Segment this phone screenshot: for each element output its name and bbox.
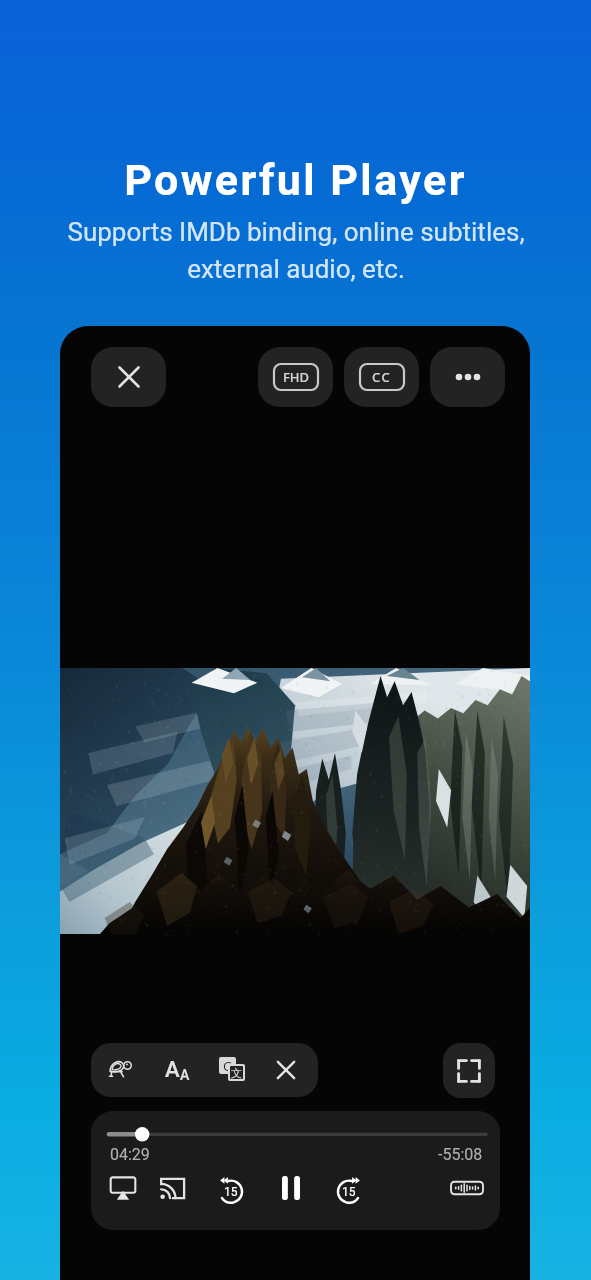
staticText: 文 [231, 1066, 242, 1079]
staticText: 15 [342, 1185, 356, 1199]
button[interactable]: Text size [155, 1048, 199, 1092]
staticText: CC [372, 368, 392, 386]
staticText: -55:08 [438, 1145, 483, 1164]
staticText: A [165, 1057, 180, 1083]
staticText: G [223, 1057, 233, 1074]
staticText: A [180, 1067, 190, 1083]
staticText: Powerful Player [124, 155, 467, 205]
button[interactable]: AirPlay [102, 1167, 144, 1209]
button[interactable]: Fullscreen [443, 1043, 495, 1098]
staticText: FHD [283, 368, 310, 386]
button[interactable]: Close tools [264, 1048, 308, 1092]
staticText: 04:29 [110, 1145, 150, 1164]
button[interactable]: Subtitles [344, 347, 419, 407]
button[interactable]: Playback speed [101, 1048, 145, 1092]
button[interactable]: Cast [151, 1167, 193, 1209]
button[interactable]: More options [430, 347, 505, 407]
button[interactable]: Quality FHD [258, 347, 333, 407]
staticText: Supports IMDb binding, online subtitles,… [67, 217, 525, 284]
staticText: 15 [224, 1185, 238, 1199]
button[interactable]: Pause [270, 1167, 312, 1209]
button[interactable]: Forward 15 seconds [328, 1167, 370, 1209]
button[interactable]: Translate [210, 1048, 254, 1092]
button[interactable]: Rewind 15 seconds [210, 1167, 252, 1209]
button[interactable]: Close [91, 347, 166, 407]
button[interactable]: Audio track [446, 1169, 488, 1207]
